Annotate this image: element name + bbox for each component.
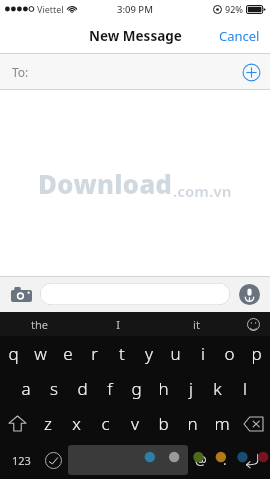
button[interactable]: Voice message — [236, 281, 262, 307]
button[interactable]: m — [207, 406, 236, 441]
button[interactable] — [40, 283, 230, 305]
button[interactable]: 123 — [4, 445, 38, 475]
staticText: p — [251, 342, 262, 365]
staticText: 92% — [225, 3, 243, 15]
staticText: r — [91, 342, 98, 365]
button[interactable]: u — [162, 336, 189, 371]
staticText: the — [31, 317, 48, 332]
button[interactable]: l — [231, 371, 258, 406]
staticText: z — [44, 412, 52, 435]
staticText: a — [21, 377, 31, 400]
staticText: j — [189, 377, 193, 400]
staticText: Download — [38, 166, 173, 201]
button[interactable]: d — [68, 371, 96, 406]
button[interactable]: I — [78, 312, 157, 336]
button[interactable]: Space — [68, 445, 188, 475]
button[interactable]: g — [123, 371, 150, 406]
button[interactable]: k — [204, 371, 231, 406]
button[interactable]: r — [81, 336, 108, 371]
staticText: I — [116, 317, 120, 332]
staticText: h — [158, 377, 169, 400]
button[interactable]: o — [216, 336, 243, 371]
staticText: 3:09 PM — [117, 3, 153, 16]
button[interactable]: x — [62, 406, 91, 441]
button[interactable]: n — [178, 406, 207, 441]
staticText: @ — [195, 451, 207, 469]
button[interactable]: s — [40, 371, 68, 406]
staticText: v — [131, 412, 139, 435]
staticText: q — [8, 342, 19, 365]
button[interactable]: z — [34, 406, 62, 441]
button[interactable]: Backspace — [236, 406, 270, 441]
button[interactable]: Camera — [8, 281, 34, 307]
staticText: s — [50, 377, 58, 400]
staticText: g — [131, 377, 142, 400]
button[interactable]: e — [54, 336, 81, 371]
staticText: it — [193, 317, 200, 332]
button[interactable]: q — [0, 336, 27, 371]
button[interactable]: h — [150, 371, 177, 406]
button[interactable]: Cancel — [209, 21, 270, 51]
staticText: .com.vn — [173, 181, 232, 201]
staticText: e — [63, 342, 73, 365]
staticText: m — [214, 412, 230, 435]
staticText: Cancel — [219, 27, 260, 45]
staticText: i — [201, 342, 205, 365]
button[interactable]: p — [243, 336, 270, 371]
staticText: . — [223, 451, 227, 469]
button[interactable]: Handwriting input — [38, 445, 68, 475]
button[interactable]: b — [149, 406, 178, 441]
staticText: x — [72, 412, 81, 435]
staticText: w — [34, 342, 47, 365]
button[interactable]: v — [120, 406, 149, 441]
button[interactable]: j — [177, 371, 204, 406]
staticText: f — [107, 377, 113, 400]
staticText: b — [158, 412, 169, 435]
staticText: d — [77, 377, 88, 400]
button[interactable]: it — [157, 312, 236, 336]
button[interactable]: c — [91, 406, 120, 441]
button[interactable]: the — [0, 312, 78, 336]
button[interactable]: f — [96, 371, 123, 406]
button[interactable]: y — [135, 336, 162, 371]
staticText: u — [170, 342, 181, 365]
button[interactable]: Emoji — [236, 312, 270, 336]
button[interactable]: a — [12, 371, 40, 406]
staticText: t — [119, 342, 125, 365]
staticText: 123 — [12, 453, 31, 468]
button[interactable]: w — [27, 336, 54, 371]
staticText: Viettel — [37, 3, 64, 15]
button[interactable]: Shift — [0, 406, 34, 441]
staticText: l — [243, 377, 247, 400]
staticText: New Message — [89, 27, 182, 45]
button[interactable]: @ — [188, 445, 214, 475]
staticText: o — [224, 342, 235, 365]
staticText: c — [101, 412, 110, 435]
staticText: y — [145, 342, 153, 365]
button[interactable]: t — [108, 336, 135, 371]
button[interactable]: Return — [236, 445, 266, 475]
staticText: k — [213, 377, 222, 400]
button[interactable]: Add contact — [240, 61, 262, 83]
button[interactable]: . — [214, 445, 236, 475]
staticText: To: — [12, 64, 29, 80]
button[interactable]: i — [189, 336, 216, 371]
staticText: n — [187, 412, 198, 435]
